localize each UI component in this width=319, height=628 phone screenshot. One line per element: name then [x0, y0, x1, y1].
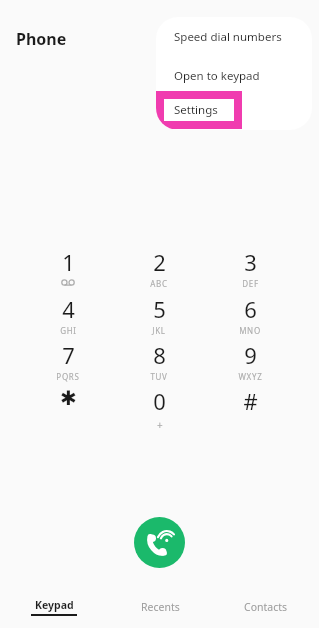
button[interactable]: Open to keypad [156, 56, 312, 95]
staticText: Settings [174, 102, 218, 118]
staticText: + [157, 418, 163, 432]
staticText: Keypad [35, 598, 74, 612]
button[interactable]: 9 [217, 340, 283, 386]
button[interactable]: 3 [217, 247, 283, 293]
staticText: ABC [150, 278, 168, 289]
button[interactable]: ✱ [35, 386, 101, 432]
button[interactable]: 1 [35, 247, 101, 293]
staticText: 1 [62, 247, 75, 277]
staticText: Open to keypad [174, 68, 260, 84]
staticText: GHI [60, 325, 77, 336]
staticText: MNO [239, 325, 261, 336]
staticText: 7 [62, 340, 75, 370]
staticText: 8 [153, 340, 166, 370]
staticText: 3 [244, 247, 257, 277]
button[interactable]: Call [134, 517, 185, 568]
button[interactable]: 0 [126, 386, 192, 432]
staticText: 0 [153, 386, 166, 416]
button[interactable]: 4 [35, 294, 101, 340]
staticText: Speed dial numbers [174, 29, 282, 45]
staticText: WXYZ [238, 371, 263, 382]
button[interactable]: Speed dial numbers [156, 17, 312, 56]
staticText: DEF [242, 278, 259, 289]
staticText: JKL [152, 325, 166, 336]
staticText: 5 [153, 294, 166, 324]
staticText: Phone [16, 28, 67, 50]
staticText: 2 [153, 247, 166, 277]
button[interactable]: 8 [126, 340, 192, 386]
staticText: 6 [244, 294, 257, 324]
staticText: PQRS [56, 371, 80, 382]
staticText: 9 [244, 340, 257, 370]
staticText: # [243, 386, 258, 416]
button[interactable]: Keypad [0, 586, 107, 628]
button[interactable]: # [217, 386, 283, 432]
button[interactable]: Recents [107, 586, 213, 628]
button[interactable]: 2 [126, 247, 192, 293]
button[interactable]: Contacts [213, 586, 319, 628]
button[interactable]: Settings [160, 95, 238, 125]
staticText: 4 [62, 294, 75, 324]
staticText: Contacts [244, 600, 288, 614]
staticText: Recents [141, 600, 180, 614]
button[interactable]: 6 [217, 294, 283, 340]
button[interactable]: 5 [126, 294, 192, 340]
button[interactable]: 7 [35, 340, 101, 386]
staticText: TUV [150, 371, 168, 382]
staticText: ✱ [60, 386, 77, 409]
